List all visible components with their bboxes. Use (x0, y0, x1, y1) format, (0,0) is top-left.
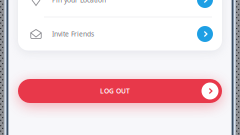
button[interactable]: Invite Friends (18, 17, 222, 50)
staticText: Pin your Location (52, 0, 106, 4)
button[interactable]: Pin your Location (18, 0, 222, 16)
staticText: Invite Friends (52, 30, 94, 38)
button[interactable]: LOG OUT (18, 79, 222, 103)
staticText: LOG OUT (100, 87, 130, 95)
